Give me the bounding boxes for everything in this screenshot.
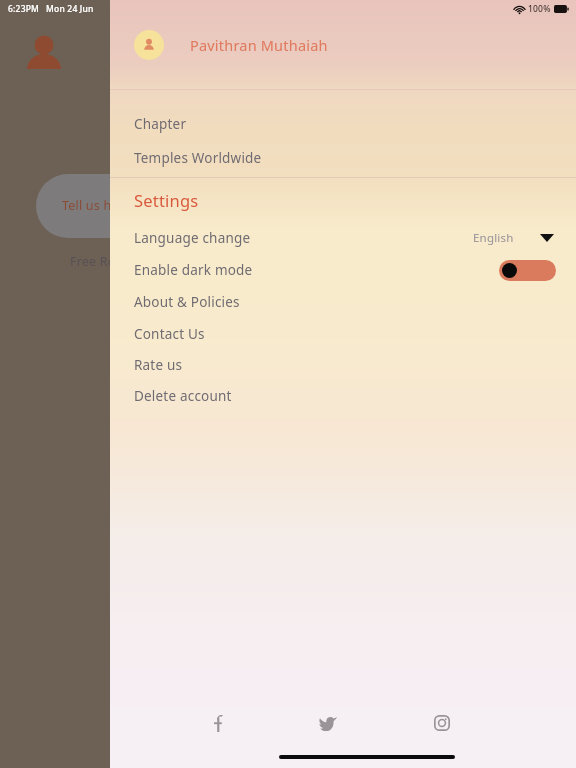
button[interactable]: Enable dark mode toggle bbox=[499, 260, 556, 281]
button[interactable]: Rate us bbox=[110, 349, 576, 380]
staticText: Chapter bbox=[134, 115, 187, 133]
staticText: Mon 24 Jun bbox=[46, 3, 94, 15]
staticText: Tell us how bbox=[62, 197, 129, 214]
button[interactable]: Enable dark mode bbox=[110, 254, 576, 286]
staticText: About & Policies bbox=[134, 293, 240, 311]
button[interactable]: Delete account bbox=[110, 380, 576, 411]
button[interactable]: Language change bbox=[110, 222, 576, 254]
button[interactable]: Twitter bbox=[312, 707, 344, 739]
staticText: Settings bbox=[134, 189, 199, 211]
staticText: 6:23PM bbox=[8, 3, 40, 15]
staticText: Temples Worldwide bbox=[134, 149, 262, 167]
button[interactable]: Facebook bbox=[202, 707, 234, 739]
button[interactable]: Contact Us bbox=[110, 318, 576, 349]
staticText: Enable dark mode bbox=[134, 261, 253, 279]
staticText: Contact Us bbox=[134, 325, 205, 343]
button[interactable]: Instagram bbox=[426, 707, 458, 739]
staticText: Rate us bbox=[134, 356, 183, 374]
button[interactable]: Chapter bbox=[110, 108, 576, 139]
staticText: English bbox=[473, 230, 514, 246]
staticText: Pavithran Muthaiah bbox=[190, 35, 328, 55]
other: Select language bbox=[538, 229, 556, 247]
staticText: 100% bbox=[528, 3, 551, 15]
button[interactable]: About & Policies bbox=[110, 286, 576, 318]
staticText: Delete account bbox=[134, 387, 232, 405]
button[interactable]: Temples Worldwide bbox=[110, 139, 576, 177]
button[interactable]: Pavithran Muthaiah bbox=[110, 0, 576, 89]
staticText: Language change bbox=[134, 229, 251, 247]
staticText: Free Reg bbox=[70, 253, 123, 270]
